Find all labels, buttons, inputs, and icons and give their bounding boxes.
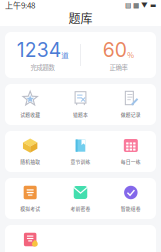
staticText: 错题本: [73, 111, 88, 118]
button[interactable]: 错题本: [55, 85, 105, 123]
staticText: 道: [61, 49, 68, 60]
staticText: 每日一练: [121, 158, 141, 165]
button[interactable]: 考前密卷: [55, 179, 105, 217]
staticText: 1234: [17, 38, 61, 62]
staticText: %: [127, 49, 134, 60]
button[interactable]: 做题记录: [106, 85, 156, 123]
button[interactable]: 每日一练: [106, 132, 156, 170]
staticText: 随机抽取: [20, 158, 40, 165]
staticText: 上午9:48: [5, 0, 35, 11]
staticText: 试题收藏: [20, 111, 40, 118]
button[interactable]: 模拟考试: [5, 179, 55, 217]
staticText: 做题记录: [121, 111, 141, 118]
button[interactable]: 试题收藏: [5, 85, 55, 123]
staticText: 完成题数: [30, 63, 54, 72]
button[interactable]: 智能组卷: [106, 179, 156, 217]
staticText: 考前密卷: [70, 205, 90, 212]
staticText: ▤ ▦ ▼ ▬: [125, 1, 156, 9]
button[interactable]: 章节训练: [55, 132, 105, 170]
staticText: 60: [103, 38, 127, 62]
staticText: 智能组卷: [121, 205, 141, 212]
staticText: 题库: [68, 9, 92, 27]
staticText: 章节训练: [70, 158, 90, 165]
staticText: 模拟考试: [20, 205, 40, 212]
staticText: 正确率: [109, 63, 127, 72]
button[interactable]: 随机抽取: [5, 132, 55, 170]
button[interactable]: 历年真题: [5, 226, 55, 252]
